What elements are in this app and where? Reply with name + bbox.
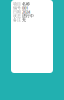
staticText: 备注 bbox=[13, 17, 21, 22]
staticText: 编号 bbox=[13, 5, 21, 10]
staticText: 2024 bbox=[22, 9, 30, 15]
staticText: 进行中 bbox=[22, 13, 34, 18]
staticText: 无 bbox=[22, 17, 26, 22]
staticText: 日期 bbox=[13, 9, 21, 14]
staticText: 名称 bbox=[22, 1, 30, 6]
staticText: 001 bbox=[22, 5, 28, 11]
staticText: 项目 bbox=[13, 1, 21, 6]
staticText: 状态 bbox=[13, 13, 21, 18]
